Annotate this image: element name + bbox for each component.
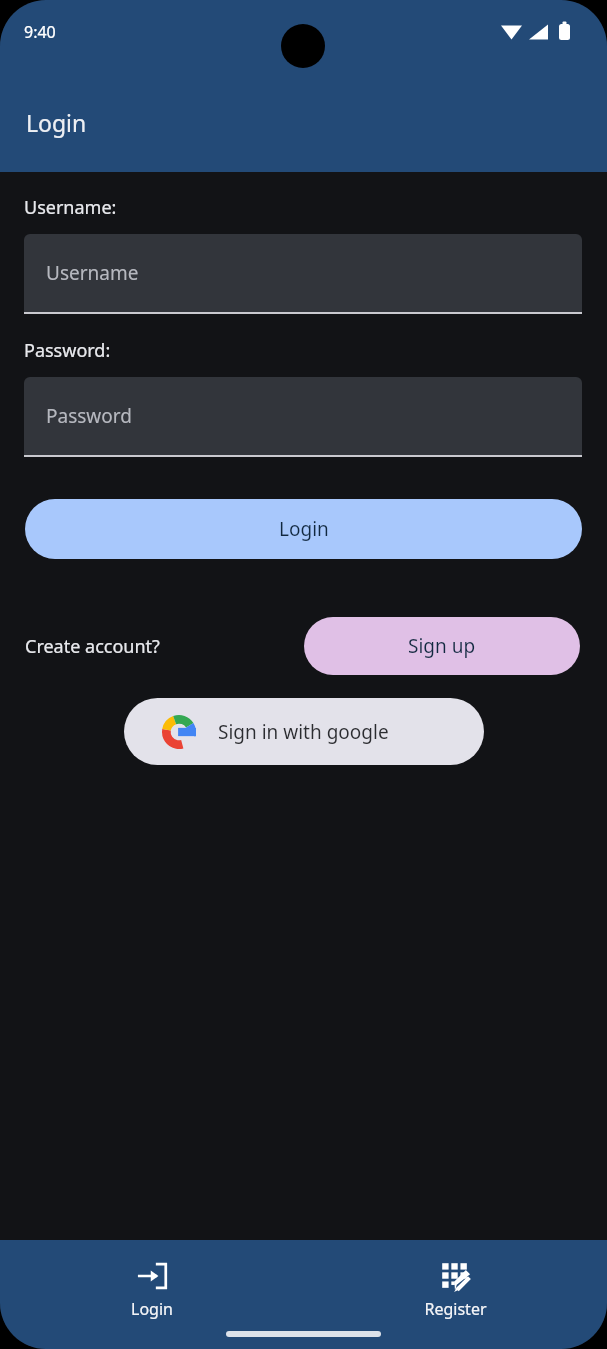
button[interactable]: Sign up bbox=[304, 617, 580, 675]
staticText: Sign in with google bbox=[218, 719, 389, 745]
button[interactable]: Register bbox=[303, 1240, 607, 1326]
staticText: Password: bbox=[24, 338, 111, 363]
staticText: Create account? bbox=[25, 634, 160, 659]
button[interactable]: Login bbox=[25, 499, 582, 559]
staticText: Login bbox=[279, 516, 329, 542]
staticText: Username bbox=[46, 260, 139, 286]
other: Login bbox=[136, 1260, 168, 1292]
staticText: Register bbox=[424, 1298, 487, 1320]
staticText: Login bbox=[26, 107, 87, 138]
button[interactable]: Password bbox=[24, 377, 582, 457]
staticText: Password bbox=[46, 403, 132, 429]
staticText: Username: bbox=[24, 195, 117, 220]
button[interactable]: Sign in with google bbox=[124, 698, 484, 765]
button[interactable]: Login bbox=[0, 1240, 303, 1326]
staticText: Login bbox=[131, 1298, 173, 1320]
other: Register bbox=[439, 1260, 471, 1292]
staticText: Sign up bbox=[408, 633, 476, 659]
staticText: 9:40 bbox=[24, 21, 56, 43]
button[interactable]: Username bbox=[24, 234, 582, 314]
